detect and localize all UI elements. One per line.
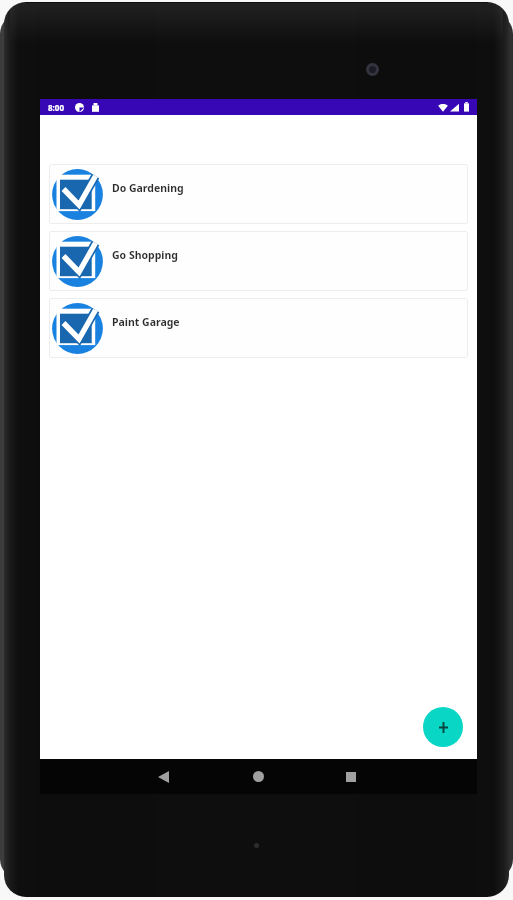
staticText: Paint Garage <box>112 315 180 329</box>
button[interactable]: Recent apps <box>333 759 369 794</box>
staticText: Do Gardening <box>112 181 184 195</box>
staticText: 8:00 <box>48 102 64 113</box>
button[interactable]: Home <box>240 759 276 794</box>
staticText: Go Shopping <box>112 248 178 262</box>
button[interactable]: Paint Garage <box>49 298 468 358</box>
button[interactable]: Back <box>145 759 181 794</box>
button[interactable]: Do Gardening <box>49 164 468 224</box>
button[interactable]: Add task <box>423 707 463 747</box>
button[interactable]: Go Shopping <box>49 231 468 291</box>
